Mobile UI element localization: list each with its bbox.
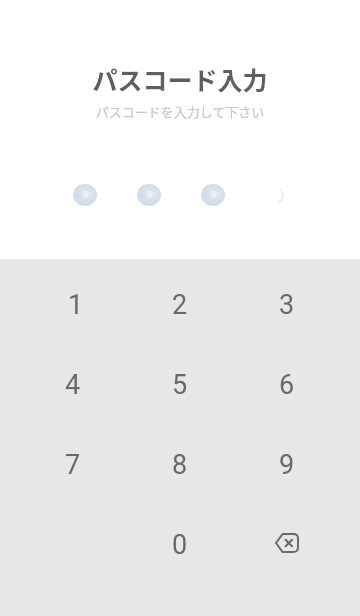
button[interactable]: 6 xyxy=(233,345,340,425)
button[interactable]: 7 xyxy=(20,425,126,505)
staticText: 8 xyxy=(172,449,188,481)
button[interactable]: 3 xyxy=(233,265,340,345)
staticText: パスコードを入力して下さい xyxy=(0,102,360,121)
button[interactable]: Backspace xyxy=(233,505,340,585)
staticText: 1 xyxy=(68,289,84,321)
staticText: 6 xyxy=(279,369,295,401)
staticText: 4 xyxy=(65,369,81,401)
button[interactable]: 0 xyxy=(126,505,233,585)
staticText: 0 xyxy=(172,529,188,561)
button[interactable]: 8 xyxy=(126,425,233,505)
button[interactable]: 9 xyxy=(233,425,340,505)
staticText: パスコード入力 xyxy=(0,61,360,97)
staticText: 2 xyxy=(172,289,188,321)
button[interactable]: 5 xyxy=(126,345,233,425)
staticText: 5 xyxy=(172,369,188,401)
button[interactable]: 1 xyxy=(20,265,126,345)
button[interactable]: 2 xyxy=(126,265,233,345)
staticText: 3 xyxy=(279,289,295,321)
button[interactable]: 4 xyxy=(20,345,126,425)
staticText: 9 xyxy=(279,449,295,481)
other: Backspace xyxy=(274,533,299,553)
staticText: 7 xyxy=(65,449,81,481)
